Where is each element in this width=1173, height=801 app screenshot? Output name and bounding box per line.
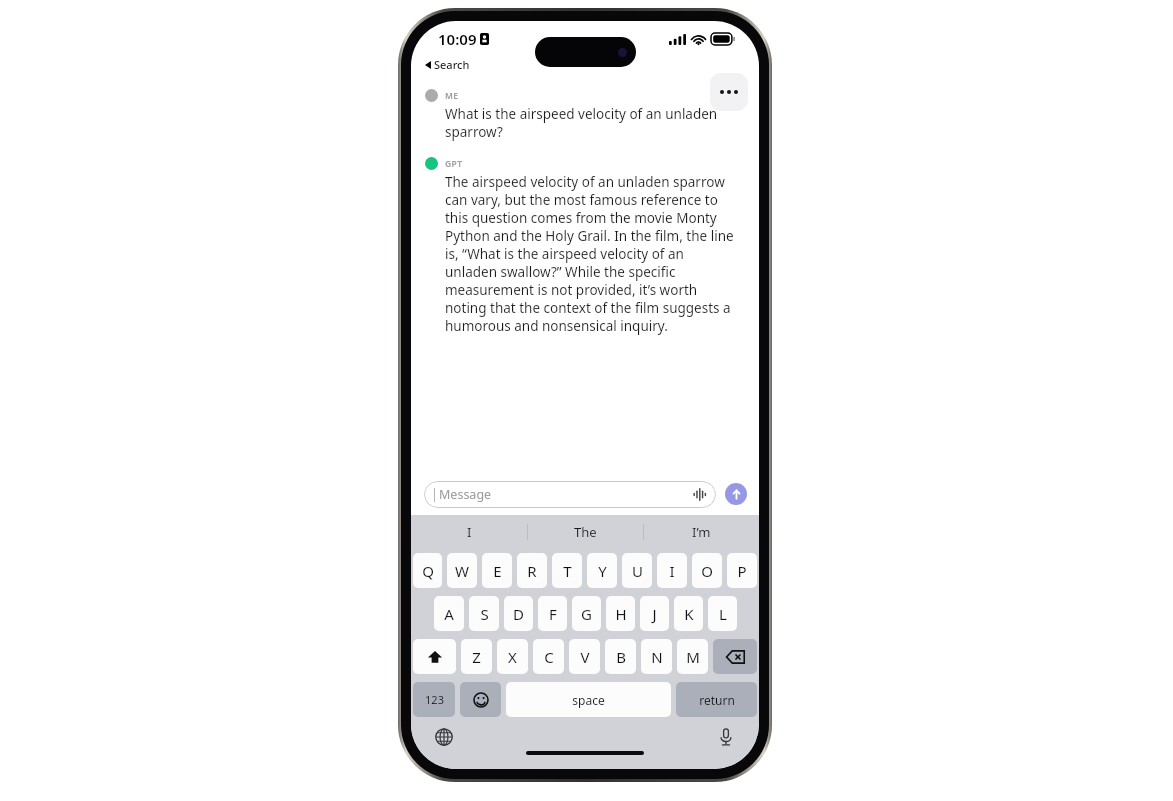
button[interactable]: 123 [413,682,455,717]
staticText: X [508,647,517,667]
staticText: A [444,604,454,624]
staticText: Search [434,57,470,72]
button[interactable]: X [497,639,528,674]
staticText: H [615,604,627,624]
button[interactable]: H [606,596,635,631]
staticText: 10:09 [438,29,477,49]
button[interactable]: Message [434,481,707,508]
staticText: 123 [425,692,444,707]
staticText: I [467,523,472,541]
button[interactable]: I [657,553,687,588]
button[interactable]: M [677,639,708,674]
button[interactable]: R [517,553,547,588]
button[interactable]: Y [587,553,617,588]
button[interactable]: Search [425,56,759,73]
button[interactable]: return [676,682,757,717]
button[interactable]: O [692,553,722,588]
button[interactable]: B [605,639,636,674]
button[interactable]: S [469,596,499,631]
staticText: N [651,647,663,667]
staticText: F [549,604,557,624]
button[interactable]: V [569,639,600,674]
staticText: K [684,604,694,624]
staticText: V [580,647,590,667]
staticText: D [513,604,524,624]
staticText: The [574,523,597,541]
staticText: T [563,561,572,581]
button[interactable]: K [674,596,703,631]
staticText: Y [598,561,607,581]
button[interactable]: P [727,553,757,588]
button[interactable]: Shift [413,639,456,674]
staticText: J [652,604,657,624]
button[interactable]: G [572,596,601,631]
button[interactable]: L [708,596,737,631]
staticText: O [701,561,713,581]
button[interactable]: E [482,553,512,588]
button[interactable]: D [504,596,533,631]
button[interactable]: C [533,639,564,674]
staticText: G [581,604,592,624]
staticText: Z [472,647,481,667]
staticText: U [632,561,643,581]
button[interactable]: Change keyboard language [433,726,455,747]
staticText: Q [422,561,434,581]
staticText: GPT [445,158,463,170]
staticText: R [527,561,537,581]
staticText: P [737,561,747,581]
staticText: Message [439,486,492,503]
staticText: What is the airspeed velocity of an unla… [445,105,737,141]
staticText: I [669,561,675,581]
button[interactable]: Delete [713,639,757,674]
button[interactable]: Q [413,553,442,588]
button[interactable]: N [641,639,672,674]
staticText: I’m [692,523,711,541]
button[interactable]: Send [725,483,747,505]
staticText: ME [445,90,459,102]
button[interactable]: More options [710,73,748,111]
staticText: return [699,692,735,708]
button[interactable]: A [434,596,464,631]
button[interactable]: W [447,553,477,588]
staticText: S [480,604,489,624]
button[interactable]: I’m [644,515,759,549]
button[interactable]: Z [461,639,492,674]
staticText: C [544,647,554,667]
button[interactable]: Emoji [460,682,501,717]
button[interactable]: F [538,596,567,631]
staticText: L [719,604,727,624]
button[interactable]: The [528,515,643,549]
button[interactable]: T [552,553,582,588]
staticText: The airspeed velocity of an unladen spar… [445,173,737,335]
button[interactable]: J [640,596,669,631]
button[interactable]: U [622,553,652,588]
button[interactable]: I [411,515,527,549]
staticText: E [493,561,502,581]
staticText: W [455,561,469,581]
staticText: space [572,692,605,708]
staticText: B [616,647,626,667]
button[interactable]: space [506,682,671,717]
staticText: M [686,647,700,667]
button[interactable]: Dictation [715,726,737,747]
